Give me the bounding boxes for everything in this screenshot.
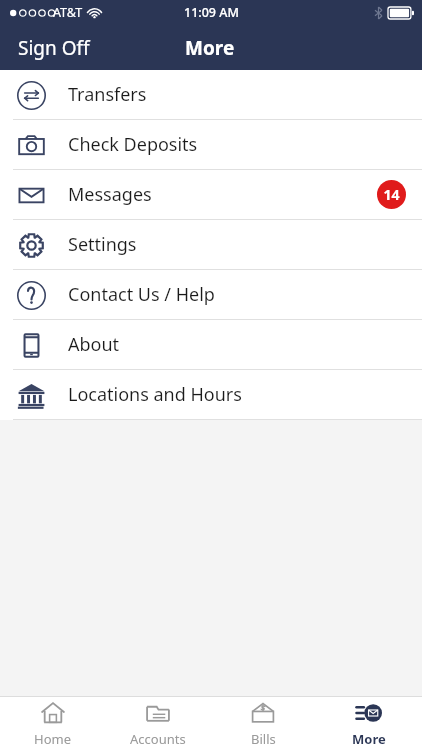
staticText: Accounts bbox=[130, 730, 186, 748]
staticText: Bills bbox=[251, 730, 276, 748]
staticText: Check Deposits bbox=[68, 132, 198, 157]
button[interactable]: Messages bbox=[0, 170, 422, 219]
button[interactable]: Contact Us / Help bbox=[0, 270, 422, 319]
button[interactable]: Bills bbox=[210, 697, 316, 750]
staticText: AT&T bbox=[53, 4, 83, 21]
button[interactable]: Accounts bbox=[105, 697, 210, 750]
button[interactable]: Transfers bbox=[0, 70, 422, 119]
staticText: More bbox=[352, 730, 386, 748]
staticText: Home bbox=[34, 730, 71, 748]
button[interactable]: More bbox=[316, 697, 422, 750]
button[interactable]: Home bbox=[0, 697, 105, 750]
button[interactable]: Sign Off bbox=[0, 29, 102, 67]
staticText: More bbox=[185, 35, 235, 61]
staticText: 14 bbox=[383, 185, 400, 204]
staticText: About bbox=[68, 332, 120, 357]
button[interactable]: Locations and Hours bbox=[0, 370, 422, 419]
staticText: Transfers bbox=[68, 82, 147, 107]
button[interactable]: Settings bbox=[0, 220, 422, 269]
button[interactable]: Check Deposits bbox=[0, 120, 422, 169]
staticText: 11:09 AM bbox=[184, 4, 239, 21]
staticText: Contact Us / Help bbox=[68, 282, 215, 307]
staticText: Locations and Hours bbox=[68, 382, 242, 407]
staticText: Messages bbox=[68, 182, 152, 207]
button[interactable]: About bbox=[0, 320, 422, 369]
staticText: Settings bbox=[68, 232, 137, 257]
